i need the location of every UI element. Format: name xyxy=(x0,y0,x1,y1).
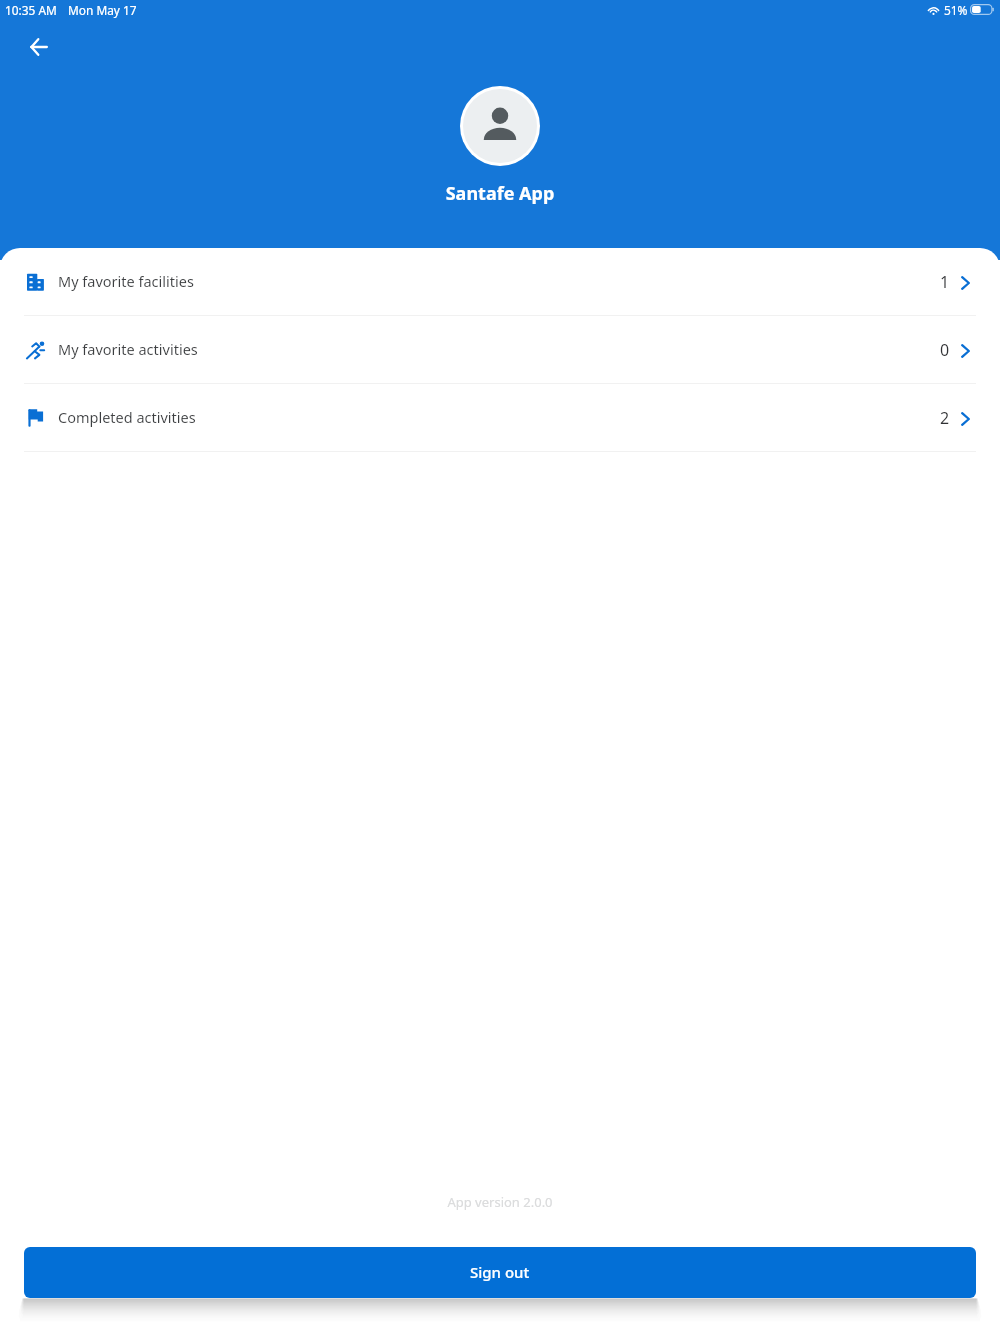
staticText: App version 2.0.0 xyxy=(0,1193,1000,1211)
staticText: 51% xyxy=(944,2,968,18)
staticText: 0 xyxy=(940,339,950,361)
staticText: 1 xyxy=(940,271,950,293)
button[interactable]: Back xyxy=(15,23,63,71)
button[interactable]: Sign out xyxy=(24,1247,976,1298)
button[interactable]: Completed activities xyxy=(0,384,1000,452)
staticText: 10:35 AM xyxy=(5,2,57,18)
staticText: Santafe App xyxy=(0,181,1000,206)
staticText: Mon May 17 xyxy=(68,2,137,18)
staticText: 2 xyxy=(940,407,950,429)
button[interactable]: My favorite facilities xyxy=(0,248,1000,316)
staticText: My favorite facilities xyxy=(58,271,194,291)
button[interactable]: My favorite activities xyxy=(0,316,1000,384)
staticText: Sign out xyxy=(470,1262,530,1282)
staticText: My favorite activities xyxy=(58,339,198,359)
staticText: Completed activities xyxy=(58,407,196,427)
